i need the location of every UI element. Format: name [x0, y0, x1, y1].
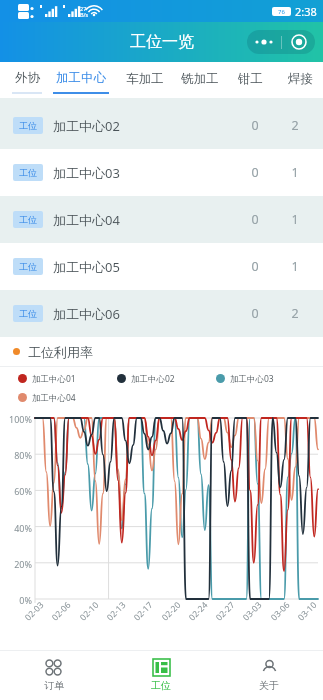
staticText: 加工中心01	[32, 373, 76, 385]
staticText: 加工中心	[56, 70, 106, 86]
staticText: 0	[235, 211, 275, 228]
staticText: 工位	[151, 679, 171, 692]
staticText: 加工中心02	[131, 373, 175, 385]
staticText: 1	[275, 211, 315, 228]
staticText: 钳工	[238, 71, 263, 87]
staticText: 2:38	[295, 4, 317, 19]
staticText: 03-03	[240, 599, 265, 623]
button[interactable]: 焊接	[285, 62, 315, 98]
button[interactable]: 外协	[12, 62, 42, 98]
button[interactable]: 工位	[0, 243, 323, 290]
staticText: 0%	[2, 594, 32, 606]
staticText: 1	[275, 164, 315, 181]
staticText: 工位利用率	[28, 344, 93, 360]
staticText: 02-10	[77, 599, 102, 623]
staticText: 76	[278, 8, 285, 16]
staticText: 加工中心06	[53, 305, 235, 323]
staticText: 40%	[2, 522, 32, 534]
staticText: 0	[235, 164, 275, 181]
staticText: 工位	[19, 167, 37, 178]
staticText: 02-17	[131, 599, 156, 623]
staticText: 02-27	[213, 599, 238, 623]
staticText: 加工中心05	[53, 258, 235, 276]
staticText: 03-10	[295, 599, 320, 623]
staticText: 02-03	[22, 599, 47, 623]
staticText: 2	[275, 305, 315, 322]
button[interactable]: 加工中心	[53, 62, 109, 98]
staticText: 60%	[2, 485, 32, 497]
staticText: 0	[235, 305, 275, 322]
staticText: 03-06	[268, 599, 293, 623]
button[interactable]: 关于	[215, 650, 323, 700]
button[interactable]: 车加工	[123, 62, 167, 98]
staticText: 订单	[44, 679, 64, 692]
staticText: 加工中心02	[53, 117, 235, 135]
button[interactable]: Close	[282, 30, 315, 54]
staticText: 外协	[15, 70, 40, 86]
button[interactable]: 工位	[0, 149, 323, 196]
staticText: 27 B/s	[80, 5, 89, 18]
staticText: 工位	[19, 308, 37, 319]
staticText: 铣加工	[181, 71, 219, 87]
staticText: 加工中心04	[32, 392, 76, 404]
staticText: 焊接	[288, 71, 313, 87]
staticText: 80%	[2, 449, 32, 461]
staticText: 0	[235, 117, 275, 134]
staticText: 02-20	[159, 599, 184, 623]
staticText: 加工中心03	[230, 373, 274, 385]
button[interactable]: 工位	[0, 290, 323, 337]
staticText: 关于	[259, 679, 279, 692]
staticText: 20%	[2, 558, 32, 570]
staticText: 2	[275, 117, 315, 134]
staticText: 工位	[19, 214, 37, 225]
staticText: 02-24	[186, 599, 211, 623]
staticText: 工位一览	[130, 32, 194, 52]
staticText: 加工中心04	[53, 211, 235, 229]
staticText: 车加工	[126, 71, 164, 87]
button[interactable]: 铣加工	[178, 62, 222, 98]
staticText: 02-13	[104, 599, 129, 623]
staticText: 工位	[19, 261, 37, 272]
staticText: 100%	[2, 413, 32, 425]
staticText: 工位	[19, 120, 37, 131]
staticText: 0	[235, 258, 275, 275]
button[interactable]: More	[247, 30, 281, 54]
button[interactable]: 工位	[0, 196, 323, 243]
button[interactable]: 钳工	[235, 62, 265, 98]
button[interactable]: 订单	[0, 650, 107, 700]
staticText: 加工中心03	[53, 164, 235, 182]
button[interactable]: 工位	[0, 102, 323, 149]
button[interactable]: 工位	[107, 650, 215, 700]
staticText: 02-06	[49, 599, 74, 623]
staticText: 1	[275, 258, 315, 275]
